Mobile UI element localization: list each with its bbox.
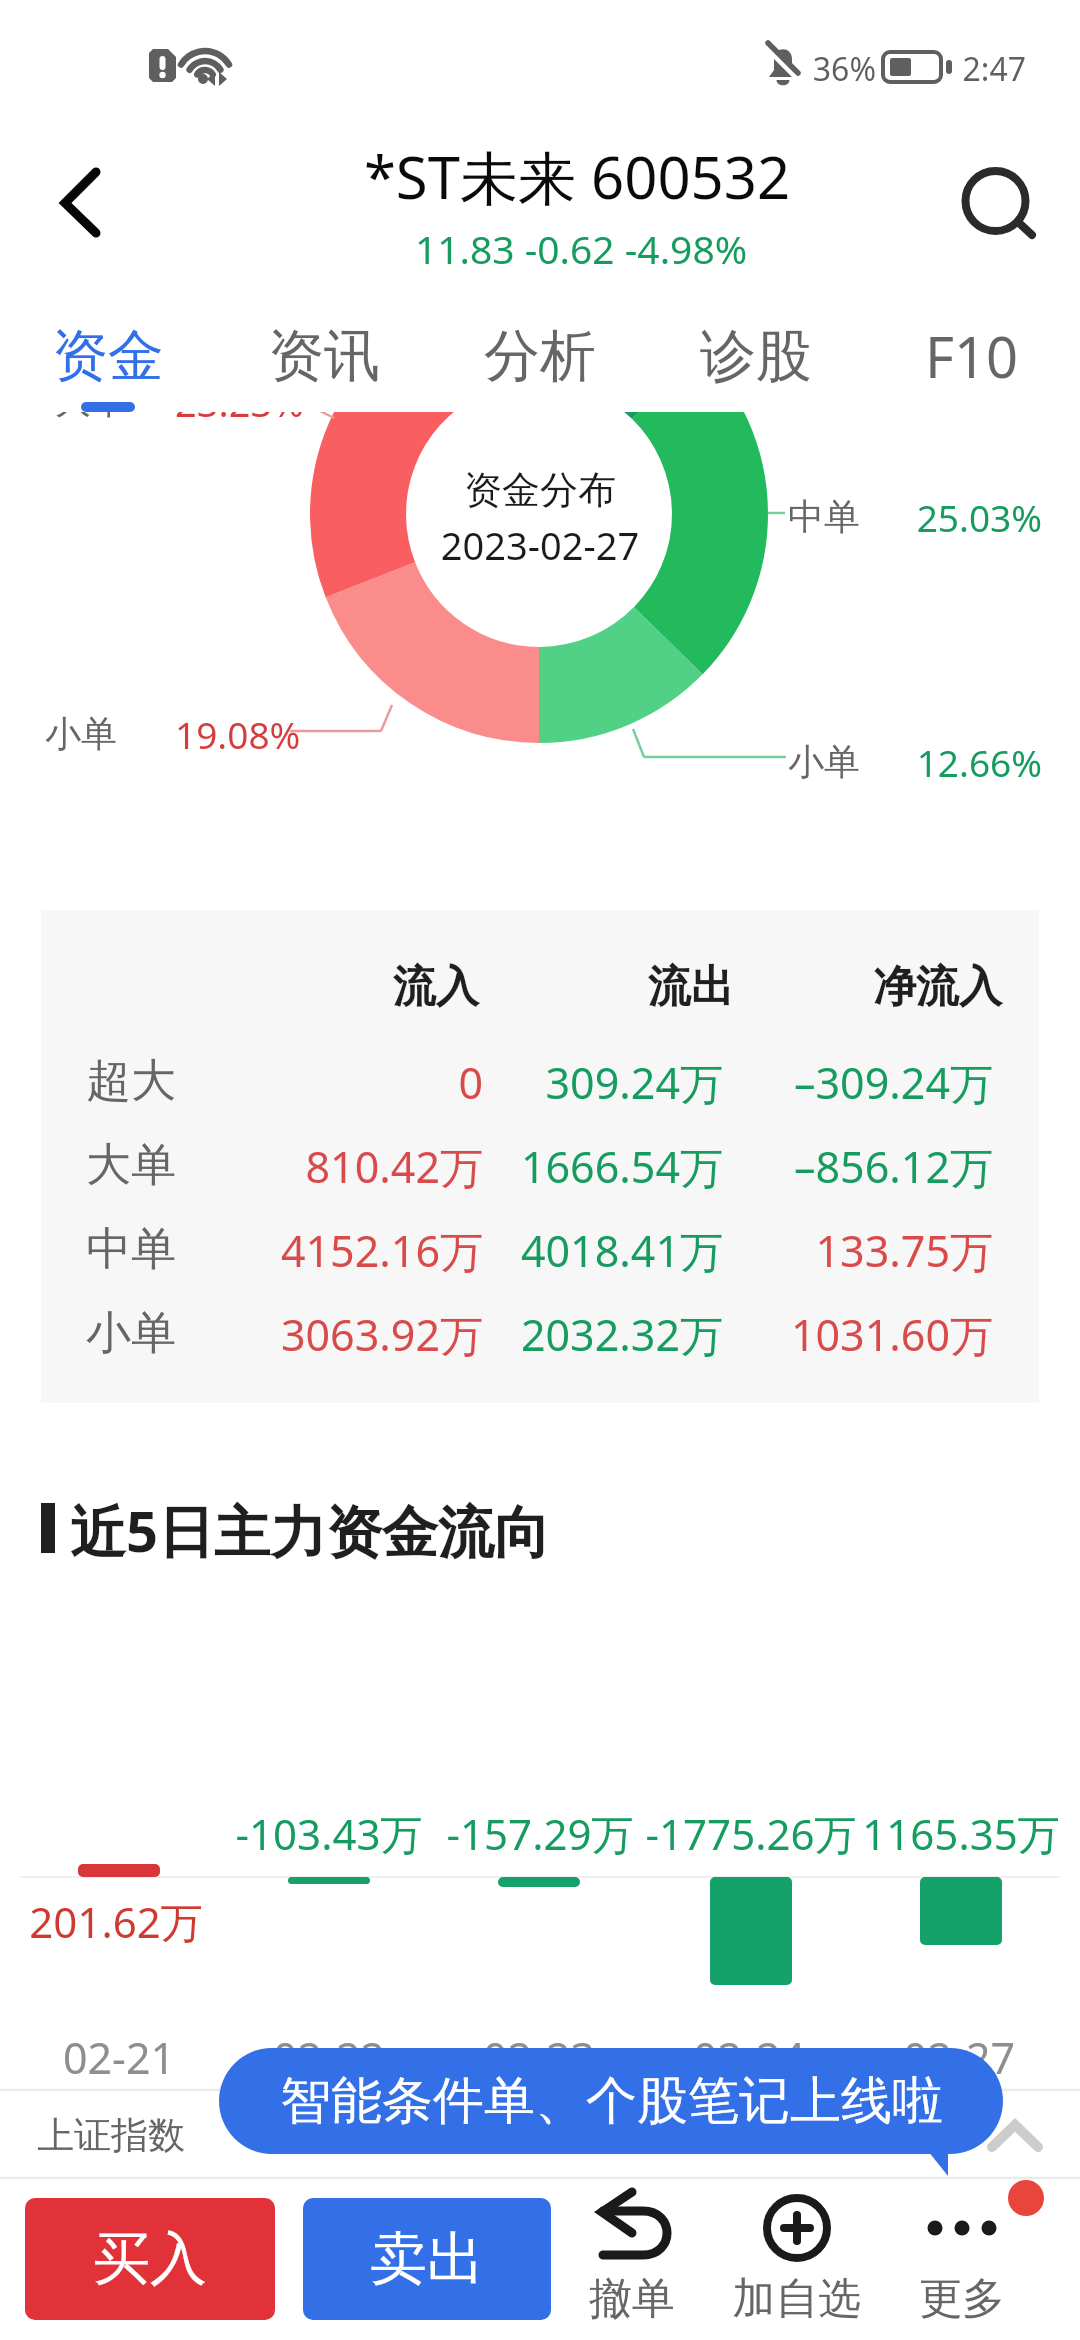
staticText: *ST未来 600532	[37, 137, 1080, 216]
staticText: 02-27	[854, 2028, 1064, 2087]
staticText: F10	[925, 318, 1019, 394]
staticText: 02-22	[224, 2028, 434, 2087]
button[interactable]: 卖出	[303, 2198, 551, 2320]
staticText: 撤单	[562, 2272, 702, 2326]
staticText: 36%	[706, 47, 876, 91]
staticText: 中单	[86, 1221, 176, 1278]
staticText: 12.66%	[908, 737, 1042, 787]
staticText: 4018.41万	[483, 1221, 723, 1280]
staticText: 更多	[892, 2272, 1032, 2326]
button[interactable]: Expand	[970, 2103, 1060, 2169]
button[interactable]: 买入	[25, 2198, 275, 2320]
button[interactable]: Back	[26, 150, 136, 260]
staticText: 309.24万	[483, 1053, 723, 1112]
staticText: -157.29万	[390, 1805, 690, 1862]
staticText: 3063.92万	[233, 1305, 483, 1364]
staticText: 流出	[534, 960, 734, 1014]
button[interactable]: Search	[940, 150, 1050, 260]
button[interactable]: 资金	[0, 300, 216, 412]
staticText: 智能条件单、个股笔记上线啦	[280, 2069, 943, 2133]
staticText: 中单	[788, 494, 860, 539]
staticText: 23.23%	[175, 376, 304, 428]
staticText: 资讯	[268, 321, 380, 392]
staticText: 卖出	[370, 2223, 484, 2295]
staticText: -1775.26万	[601, 1805, 901, 1862]
staticText: –309.24万	[743, 1053, 993, 1112]
button[interactable]: 诊股	[648, 300, 864, 412]
staticText: 4152.16万	[233, 1221, 483, 1280]
staticText: 诊股	[700, 321, 812, 392]
staticText: 11.83 -0.62 -4.98%	[41, 222, 1080, 275]
staticText: 分析	[484, 321, 596, 392]
button[interactable]: 撤单	[562, 2183, 702, 2340]
staticText: 19.08%	[175, 709, 301, 759]
staticText: 201.62万	[0, 1893, 232, 1950]
staticText: 0	[233, 1053, 483, 1112]
staticText: 小单	[45, 711, 117, 756]
staticText: 2:47	[856, 47, 1026, 91]
button[interactable]: 智能条件单、个股笔记上线啦	[219, 2048, 1003, 2178]
staticText: -103.43万	[179, 1805, 479, 1862]
staticText: 净流入	[752, 960, 1002, 1014]
staticText: 1031.60万	[743, 1305, 993, 1364]
button[interactable]: 资讯	[216, 300, 432, 412]
staticText: 810.42万	[233, 1137, 483, 1196]
staticText: 超大	[86, 1053, 176, 1110]
staticText: –856.12万	[743, 1137, 993, 1196]
staticText: 流入	[279, 960, 479, 1014]
button[interactable]: 分析	[432, 300, 648, 412]
staticText: 1165.35万	[811, 1805, 1080, 1862]
staticText: 133.75万	[743, 1221, 993, 1280]
staticText: 上证指数	[37, 2112, 185, 2159]
staticText: 近5日主力资金流向	[70, 1492, 551, 1568]
staticText: 资金分布	[0, 466, 1080, 514]
staticText: 02-21	[14, 2028, 224, 2087]
staticText: 2032.32万	[483, 1305, 723, 1364]
staticText: 02-23	[434, 2028, 644, 2087]
staticText: 小单	[788, 739, 860, 784]
staticText: 小单	[86, 1305, 176, 1362]
staticText: 25.03%	[908, 492, 1042, 542]
button[interactable]: 加自选	[727, 2183, 867, 2340]
staticText: 1666.54万	[483, 1137, 723, 1196]
staticText: 资金	[52, 321, 164, 392]
staticText: 加自选	[727, 2272, 867, 2326]
button[interactable]: F10	[864, 300, 1080, 412]
button[interactable]: 更多	[892, 2183, 1032, 2340]
staticText: 大单	[55, 378, 127, 423]
staticText: 买入	[93, 2223, 207, 2295]
staticText: 02-24	[644, 2028, 854, 2087]
staticText: 大单	[86, 1137, 176, 1194]
staticText: 2023-02-27	[0, 519, 1080, 571]
